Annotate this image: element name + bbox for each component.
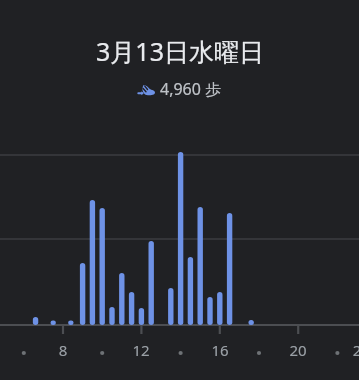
staticText: 12	[123, 340, 159, 360]
staticText: 20	[280, 340, 316, 360]
button[interactable]: 3月13日水曜日	[0, 0, 359, 100]
staticText: 2	[339, 340, 359, 360]
staticText: 8	[45, 340, 81, 360]
other: Steps	[138, 81, 155, 98]
staticText: 3月13日水曜日	[96, 34, 264, 68]
staticText: 4,960 歩	[160, 78, 222, 100]
staticText: 16	[202, 340, 238, 360]
